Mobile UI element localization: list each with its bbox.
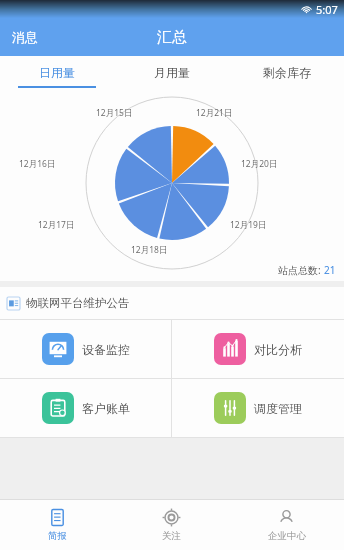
staticText: 21 <box>324 263 336 277</box>
button[interactable]: 对比分析 <box>172 320 344 378</box>
staticText: 5:07 <box>316 2 338 17</box>
staticText: 物联网平台维护公告 <box>26 296 130 310</box>
staticText: 12月15日 <box>96 107 133 119</box>
button[interactable]: 月用量 <box>114 56 229 91</box>
staticText: 企业中心 <box>268 530 306 542</box>
staticText: 12月20日 <box>241 158 278 170</box>
staticText: 站点总数: <box>278 263 324 277</box>
staticText: 12月16日 <box>19 158 56 170</box>
staticText: 剩余库存 <box>263 65 311 80</box>
button[interactable]: 日用量 <box>0 56 114 91</box>
staticText: 12月19日 <box>230 219 267 231</box>
button[interactable]: 企业中心 <box>229 500 344 550</box>
button[interactable]: 消息 <box>0 21 50 53</box>
staticText: 月用量 <box>154 65 190 80</box>
button[interactable]: 物联网平台维护公告 <box>0 287 344 319</box>
button[interactable]: 客户账单 <box>0 379 171 437</box>
button[interactable]: 设备监控 <box>0 320 171 378</box>
staticText: 设备监控 <box>82 342 130 357</box>
button[interactable]: 调度管理 <box>172 379 344 437</box>
button[interactable]: 关注 <box>114 500 229 550</box>
staticText: 日用量 <box>39 65 75 80</box>
staticText: 对比分析 <box>254 342 302 357</box>
staticText: 调度管理 <box>254 401 302 416</box>
button[interactable]: 剩余库存 <box>229 56 344 91</box>
staticText: 关注 <box>162 530 181 542</box>
staticText: 简报 <box>48 530 67 542</box>
staticText: 12月21日 <box>196 107 233 119</box>
button[interactable]: 简报 <box>0 500 114 550</box>
staticText: 12月17日 <box>38 219 75 231</box>
staticText: 消息 <box>12 29 38 45</box>
staticText: 客户账单 <box>82 401 130 416</box>
staticText: 汇总 <box>157 28 187 47</box>
staticText: 12月18日 <box>131 244 168 256</box>
